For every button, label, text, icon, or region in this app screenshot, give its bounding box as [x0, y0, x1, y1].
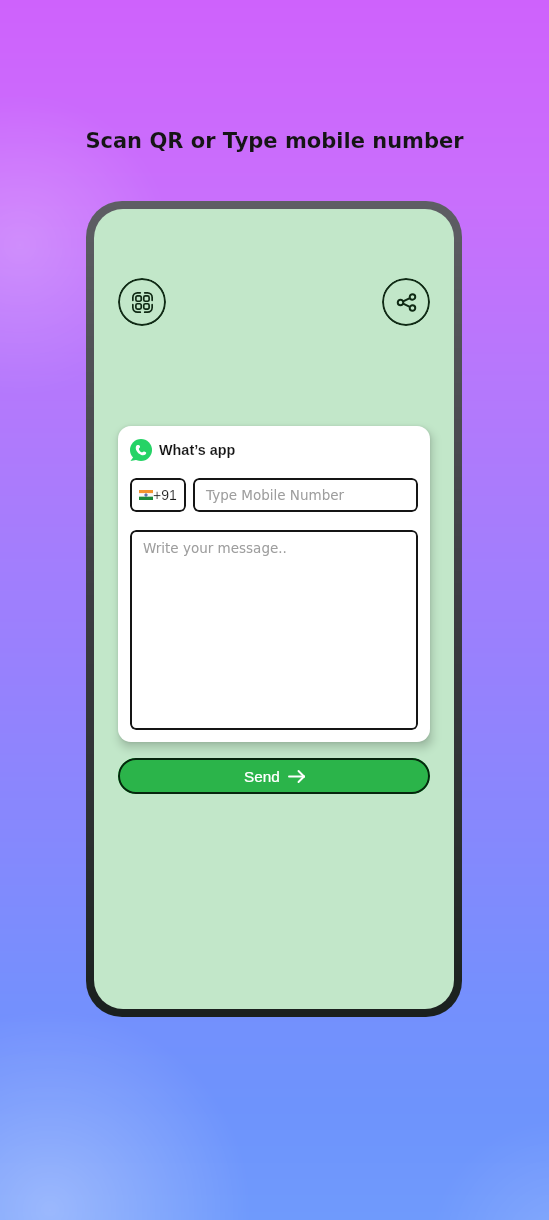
staticText: Send: [244, 768, 280, 785]
button[interactable]: Share: [382, 278, 430, 326]
button[interactable]: Write your message..: [130, 530, 418, 730]
button[interactable]: Send: [118, 758, 430, 794]
staticText: +91: [153, 487, 177, 503]
staticText: What’s app: [159, 442, 236, 458]
staticText: Scan QR or Type mobile number: [0, 129, 549, 153]
staticText: Write your message..: [143, 540, 287, 556]
button[interactable]: +91: [130, 478, 186, 512]
button[interactable]: Scan QR code: [118, 278, 166, 326]
button[interactable]: Type Mobile Number: [193, 478, 418, 512]
staticText: Type Mobile Number: [206, 487, 345, 503]
